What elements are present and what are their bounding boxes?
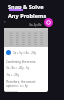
staticText: 3x + 5y = 8x - 20y	[13, 51, 37, 55]
staticText: option is : x = 5y	[6, 84, 28, 88]
staticText: 3x+5y=8x	[29, 23, 42, 27]
button[interactable]: Scan problem	[44, 18, 53, 27]
staticText: Therefore, the correct	[6, 80, 36, 84]
staticText: Any Problems	[8, 12, 47, 20]
staticText: -5x = -25y	[6, 73, 19, 77]
staticText: 3x - 8x = -20y - 5y	[6, 66, 30, 70]
staticText: Snap & Solve	[8, 3, 44, 11]
staticText: Combining like terms:	[6, 60, 36, 64]
